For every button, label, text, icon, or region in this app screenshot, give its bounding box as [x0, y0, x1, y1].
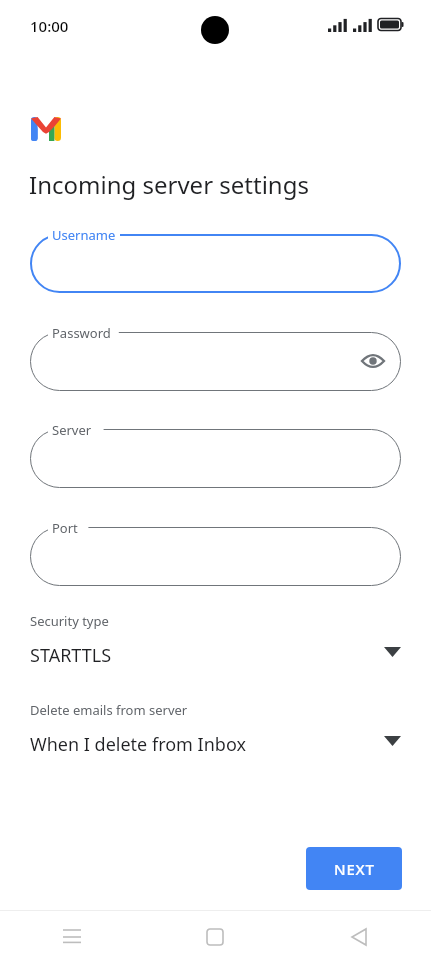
- button[interactable]: NEXT: [306, 847, 402, 890]
- button[interactable]: Recent apps: [0, 910, 143, 964]
- button[interactable]: Port field: [30, 527, 401, 586]
- staticText: Delete emails from server: [30, 701, 188, 719]
- staticText: NEXT: [334, 859, 375, 879]
- button[interactable]: Server field: [30, 429, 401, 488]
- staticText: When I delete from Inbox: [30, 732, 246, 757]
- staticText: Incoming server settings: [29, 168, 309, 201]
- staticText: Port: [52, 519, 78, 537]
- staticText: Security type: [30, 612, 109, 630]
- staticText: Username: [52, 226, 116, 244]
- staticText: STARTTLS: [30, 643, 112, 668]
- button[interactable]: Home: [143, 910, 287, 964]
- button[interactable]: Security type: [30, 612, 401, 674]
- button[interactable]: Back: [287, 910, 431, 964]
- button[interactable]: Show password: [355, 343, 391, 379]
- button[interactable]: Delete emails from server: [30, 701, 401, 763]
- button[interactable]: Password field: [30, 332, 401, 391]
- staticText: Server: [52, 421, 92, 439]
- button[interactable]: Username field: [30, 234, 401, 293]
- staticText: 10:00: [30, 16, 69, 36]
- staticText: Password: [52, 324, 111, 342]
